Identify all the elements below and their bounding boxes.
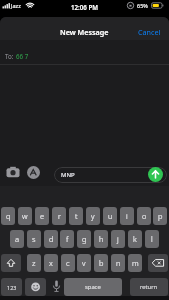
button[interactable] xyxy=(1,254,21,272)
staticText: m xyxy=(132,258,139,268)
staticText: 123 xyxy=(7,284,17,291)
staticText: u xyxy=(108,211,113,221)
staticText: e xyxy=(40,211,45,221)
staticText: x xyxy=(49,258,53,268)
button[interactable]: To: xyxy=(0,40,169,64)
button[interactable]: e xyxy=(35,207,49,225)
button[interactable] xyxy=(148,167,163,182)
button[interactable] xyxy=(6,166,20,178)
button[interactable]: d xyxy=(44,230,58,248)
staticText: New Message xyxy=(60,27,109,37)
button[interactable]: q xyxy=(1,207,15,225)
button[interactable]: Cancel xyxy=(138,27,161,37)
staticText: a xyxy=(15,234,20,244)
button[interactable]: l xyxy=(145,230,159,248)
button[interactable]: s xyxy=(27,230,41,248)
button[interactable]: h xyxy=(94,230,108,248)
staticText: n xyxy=(116,258,121,268)
button[interactable]: x xyxy=(44,254,58,272)
staticText: k xyxy=(133,234,137,244)
button[interactable]: w xyxy=(18,207,32,225)
staticText: q xyxy=(6,211,11,221)
button[interactable]: space xyxy=(64,278,122,296)
button[interactable] xyxy=(25,278,46,296)
button[interactable]: g xyxy=(77,230,91,248)
staticText: j xyxy=(117,234,119,244)
staticText: return xyxy=(140,283,158,291)
staticText: p xyxy=(158,211,163,221)
staticText: o xyxy=(142,211,147,221)
staticText: Jazz xyxy=(11,2,21,9)
staticText: w xyxy=(22,211,28,221)
staticText: MNP xyxy=(61,171,75,179)
staticText: i xyxy=(126,211,128,221)
button[interactable]: j xyxy=(111,230,125,248)
button[interactable]: n xyxy=(111,254,125,272)
staticText: Cancel xyxy=(138,27,161,37)
staticText: 12:06 PM xyxy=(71,3,99,11)
button[interactable]: r xyxy=(52,207,66,225)
staticText: To: xyxy=(5,52,14,60)
staticText: 66 7 xyxy=(16,52,29,60)
button[interactable] xyxy=(52,280,61,294)
button[interactable]: i xyxy=(120,207,134,225)
button[interactable]: b xyxy=(94,254,108,272)
button[interactable]: f xyxy=(60,230,74,248)
staticText: v xyxy=(82,258,86,268)
staticText: h xyxy=(99,234,104,244)
button[interactable]: z xyxy=(27,254,41,272)
button[interactable]: return xyxy=(130,278,168,296)
button[interactable] xyxy=(148,254,168,272)
staticText: t xyxy=(75,211,78,221)
staticText: d xyxy=(49,234,54,244)
button[interactable]: v xyxy=(77,254,91,272)
button[interactable]: MNP xyxy=(54,167,167,183)
button[interactable] xyxy=(27,166,40,179)
staticText: f xyxy=(66,234,69,244)
staticText: g xyxy=(82,234,87,244)
staticText: z xyxy=(32,258,36,268)
button[interactable]: k xyxy=(128,230,142,248)
button[interactable]: m xyxy=(128,254,142,272)
button[interactable]: u xyxy=(103,207,117,225)
staticText: space xyxy=(85,283,101,291)
button[interactable]: y xyxy=(86,207,100,225)
staticText: s xyxy=(32,234,36,244)
button[interactable]: c xyxy=(61,254,75,272)
staticText: r xyxy=(58,211,61,221)
staticText: c xyxy=(66,258,70,268)
button[interactable]: p xyxy=(153,207,167,225)
button[interactable]: o xyxy=(137,207,151,225)
staticText: l xyxy=(151,234,153,244)
staticText: 65% xyxy=(137,2,148,9)
staticText: y xyxy=(91,211,95,221)
button[interactable]: 123 xyxy=(1,278,22,296)
button[interactable]: a xyxy=(10,230,24,248)
button[interactable]: t xyxy=(69,207,83,225)
staticText: b xyxy=(99,258,104,268)
